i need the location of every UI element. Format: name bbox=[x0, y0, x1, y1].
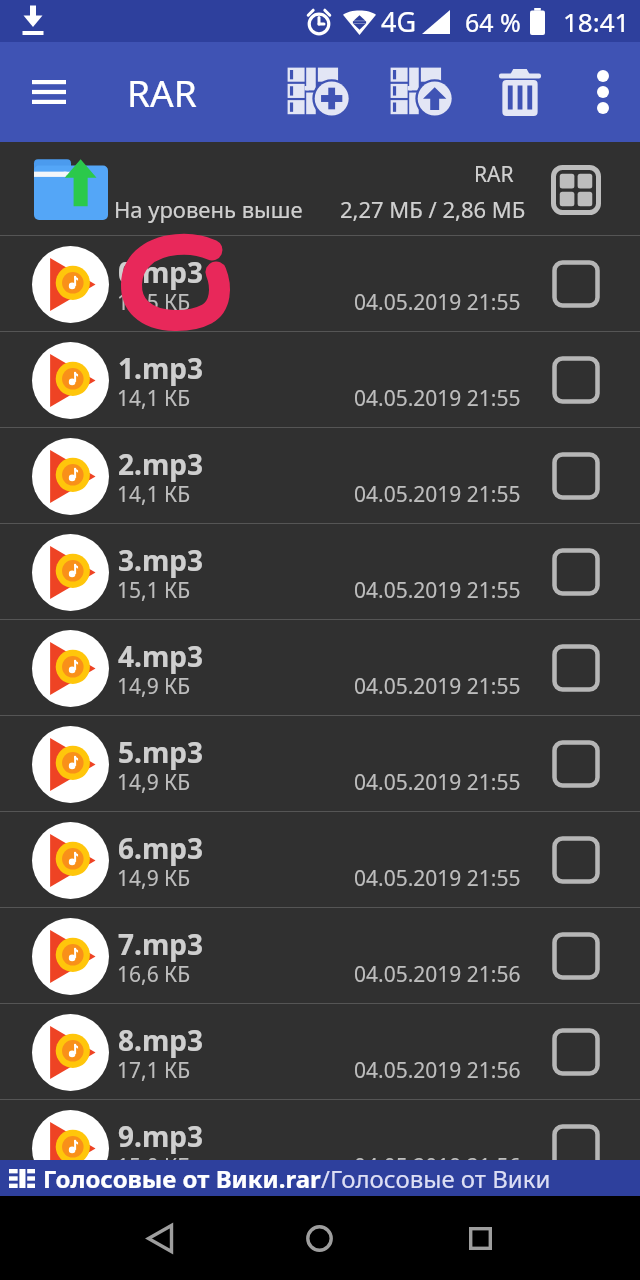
staticText: 1.mp3 bbox=[118, 349, 203, 387]
staticText: Голосовые от Вики.rar bbox=[43, 1162, 321, 1195]
staticText: 04.05.2019 21:55 bbox=[354, 672, 521, 701]
staticText: 04.05.2019 21:55 bbox=[354, 480, 521, 509]
staticText: 04.05.2019 21:55 bbox=[354, 768, 521, 797]
staticText: 04.05.2019 21:56 bbox=[354, 1056, 521, 1085]
button[interactable]: 3.mp3 bbox=[0, 524, 640, 620]
button[interactable]: Select file bbox=[548, 736, 604, 792]
button[interactable]: Select file bbox=[548, 832, 604, 888]
button[interactable]: Select file bbox=[548, 352, 604, 408]
button[interactable]: Recents bbox=[440, 1196, 520, 1280]
staticText: 4.mp3 bbox=[118, 637, 203, 675]
staticText: 16,6 КБ bbox=[117, 960, 191, 989]
button[interactable]: Select file bbox=[548, 448, 604, 504]
button[interactable]: 0.mp3 bbox=[0, 236, 640, 332]
button[interactable]: Select file bbox=[548, 1024, 604, 1080]
staticText: 13,5 КБ bbox=[117, 288, 191, 317]
button[interactable]: Back bbox=[120, 1196, 200, 1280]
button[interactable]: Home bbox=[279, 1196, 359, 1280]
button[interactable]: Menu bbox=[16, 42, 82, 142]
button[interactable]: Select file bbox=[548, 640, 604, 696]
staticText: 15,1 КБ bbox=[117, 576, 191, 605]
staticText: 64 % bbox=[465, 5, 521, 39]
staticText: 15,0 КБ bbox=[117, 1152, 191, 1181]
button[interactable]: Extract bbox=[379, 42, 467, 142]
staticText: 04.05.2019 21:56 bbox=[354, 1152, 521, 1181]
button[interactable]: 9.mp3 bbox=[0, 1100, 640, 1196]
button[interactable]: 7.mp3 bbox=[0, 908, 640, 1004]
staticText: 14,9 КБ bbox=[117, 768, 191, 797]
button[interactable]: 8.mp3 bbox=[0, 1004, 640, 1100]
button[interactable]: 1.mp3 bbox=[0, 332, 640, 428]
staticText: /Голосовые от Вики bbox=[321, 1162, 551, 1195]
staticText: 04.05.2019 21:55 bbox=[354, 864, 521, 893]
staticText: 0.mp3 bbox=[118, 253, 203, 291]
button[interactable]: Grid view bbox=[548, 162, 604, 218]
button[interactable]: 5.mp3 bbox=[0, 716, 640, 812]
button[interactable]: Select file bbox=[548, 544, 604, 600]
staticText: 5.mp3 bbox=[118, 733, 203, 771]
button[interactable]: Select file bbox=[548, 928, 604, 984]
staticText: 14,9 КБ bbox=[117, 864, 191, 893]
button[interactable]: Current archive path bbox=[0, 1160, 640, 1196]
staticText: 14,1 КБ bbox=[117, 384, 191, 413]
staticText: 8.mp3 bbox=[118, 1021, 203, 1059]
button[interactable]: 4.mp3 bbox=[0, 620, 640, 716]
button[interactable]: Add to archive bbox=[276, 42, 364, 142]
staticText: 17,1 КБ bbox=[117, 1056, 191, 1085]
button[interactable]: Select file bbox=[548, 256, 604, 312]
staticText: 04.05.2019 21:55 bbox=[354, 288, 521, 317]
staticText: 3.mp3 bbox=[118, 541, 203, 579]
button[interactable]: More options bbox=[566, 42, 640, 142]
staticText: RAR bbox=[474, 160, 514, 189]
staticText: 04.05.2019 21:55 bbox=[354, 384, 521, 413]
staticText: 04.05.2019 21:55 bbox=[354, 576, 521, 605]
button[interactable]: 6.mp3 bbox=[0, 812, 640, 908]
staticText: 6.mp3 bbox=[118, 829, 203, 867]
button[interactable]: Select file bbox=[548, 1120, 604, 1176]
staticText: 7.mp3 bbox=[118, 925, 203, 963]
staticText: 2,27 МБ / 2,86 МБ bbox=[340, 194, 526, 224]
staticText: 4G bbox=[381, 3, 417, 40]
staticText: 9.mp3 bbox=[118, 1117, 203, 1155]
button[interactable]: Delete bbox=[478, 42, 562, 142]
staticText: На уровень выше bbox=[114, 194, 303, 224]
staticText: 04.05.2019 21:56 bbox=[354, 960, 521, 989]
button[interactable]: 2.mp3 bbox=[0, 428, 640, 524]
staticText: 2.mp3 bbox=[118, 445, 203, 483]
staticText: 14,1 КБ bbox=[117, 480, 191, 509]
staticText: 18:41 bbox=[563, 4, 630, 39]
button[interactable]: На уровень выше bbox=[0, 142, 640, 236]
staticText: RAR bbox=[127, 67, 197, 117]
staticText: 14,9 КБ bbox=[117, 672, 191, 701]
